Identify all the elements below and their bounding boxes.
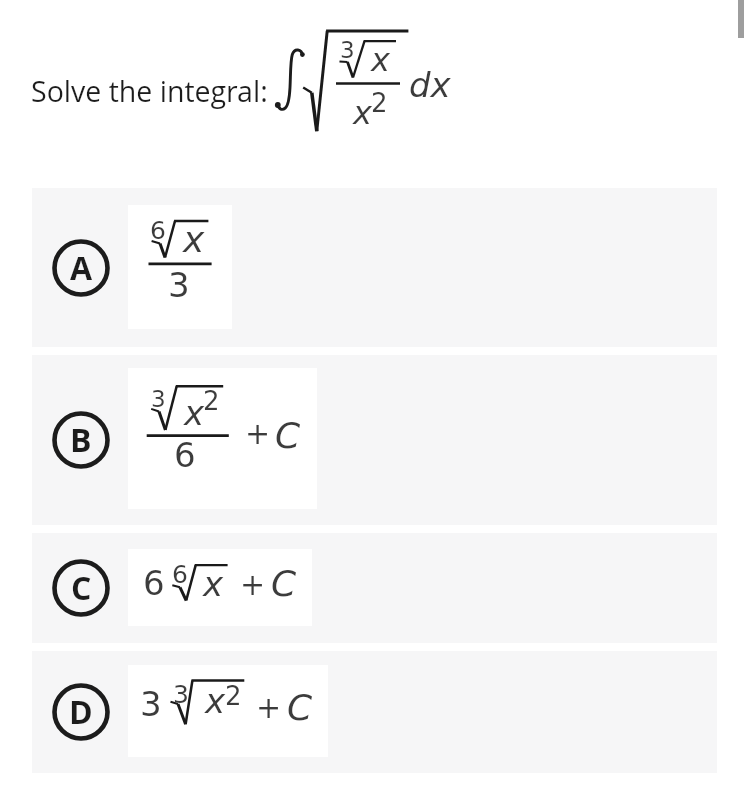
staticText: A bbox=[70, 246, 93, 290]
staticText: 3 bbox=[168, 265, 190, 305]
staticText: C bbox=[71, 566, 92, 610]
button[interactable]: A bbox=[32, 188, 717, 347]
button[interactable]: C bbox=[32, 533, 717, 643]
staticText: + bbox=[256, 690, 282, 725]
staticText: Solve the integral: bbox=[31, 72, 268, 111]
staticText: x bbox=[203, 564, 224, 604]
staticText: 3 bbox=[140, 684, 162, 724]
staticText: 2 bbox=[371, 88, 388, 118]
staticText: + bbox=[245, 416, 271, 451]
staticText: dx bbox=[409, 65, 451, 105]
staticText: 6 bbox=[143, 563, 165, 603]
staticText: 6 bbox=[172, 560, 188, 589]
staticText: 6 bbox=[174, 435, 196, 475]
staticText: C bbox=[287, 687, 313, 729]
staticText: 6 bbox=[150, 216, 166, 245]
button[interactable]: D bbox=[32, 651, 717, 773]
staticText: x bbox=[371, 41, 390, 78]
staticText: D bbox=[69, 690, 93, 734]
staticText: 2 bbox=[225, 681, 242, 711]
staticText: + bbox=[240, 567, 266, 602]
button[interactable]: B bbox=[32, 355, 717, 525]
staticText: 3 bbox=[173, 680, 189, 709]
staticText: x bbox=[353, 94, 372, 131]
staticText: 3 bbox=[340, 37, 355, 64]
staticText: 3 bbox=[151, 386, 166, 413]
staticText: x bbox=[183, 219, 205, 261]
staticText: B bbox=[70, 418, 92, 462]
staticText: x bbox=[205, 681, 226, 721]
staticText: C bbox=[275, 415, 301, 457]
staticText: 2 bbox=[203, 386, 220, 416]
staticText: x bbox=[184, 393, 205, 433]
staticText: C bbox=[271, 563, 297, 605]
